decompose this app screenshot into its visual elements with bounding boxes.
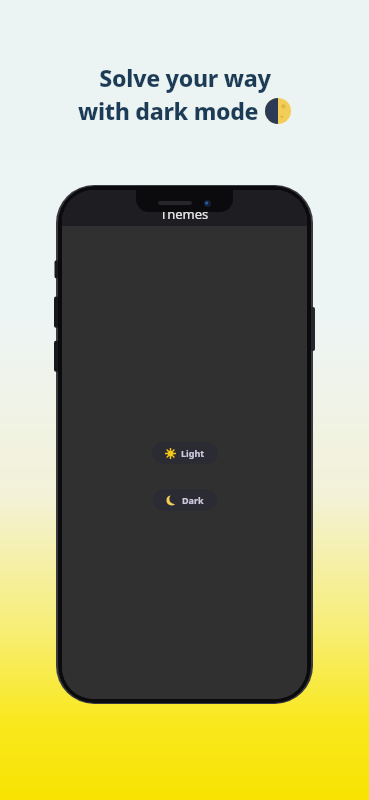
button[interactable]: Dark theme — [153, 489, 217, 511]
button[interactable]: Light theme — [152, 442, 218, 464]
other: Light theme — [165, 448, 176, 459]
staticText: Light — [181, 447, 205, 459]
other: Dark theme — [166, 495, 177, 506]
staticText: Dark — [182, 494, 204, 506]
staticText: Solve your way — [99, 62, 271, 93]
staticText: with dark mode — [78, 95, 259, 126]
staticText: Themes — [160, 205, 209, 223]
